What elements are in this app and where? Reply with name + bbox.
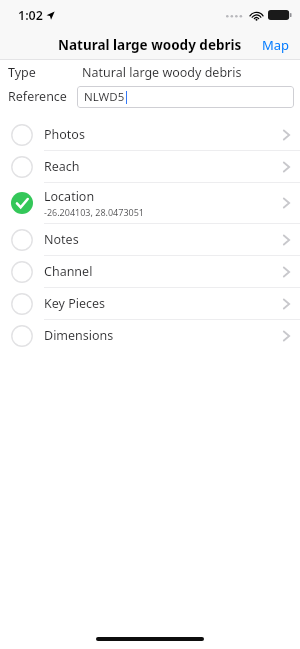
staticText: Natural large woody debris [58, 36, 242, 54]
button[interactable]: Map [252, 32, 300, 58]
staticText: Dimensions [44, 327, 114, 344]
staticText: Photos [44, 126, 85, 143]
button[interactable]: Dimensions [0, 320, 300, 351]
staticText: 1:02 [18, 7, 43, 24]
button[interactable]: Channel [0, 256, 300, 287]
staticText: Type [8, 64, 36, 81]
staticText: Map [262, 36, 290, 54]
staticText: Reference [8, 88, 67, 105]
button[interactable]: NLWD5 [77, 86, 294, 108]
button[interactable]: Notes [0, 224, 300, 255]
other: Home [96, 637, 204, 641]
staticText: Channel [44, 263, 93, 280]
staticText: -26.204103, 28.0473051 [44, 206, 144, 218]
staticText: Natural large woody debris [82, 64, 242, 81]
button[interactable]: Natural large woody debris [58, 36, 242, 54]
staticText: Key Pieces [44, 295, 106, 312]
staticText: Reach [44, 158, 80, 175]
button[interactable]: Key Pieces [0, 288, 300, 319]
button[interactable]: Location [0, 183, 300, 223]
button[interactable]: Photos [0, 119, 300, 150]
button[interactable]: Reach [0, 151, 300, 182]
staticText: Location [44, 188, 95, 205]
staticText: Notes [44, 231, 79, 248]
staticText: NLWD5 [84, 89, 125, 105]
